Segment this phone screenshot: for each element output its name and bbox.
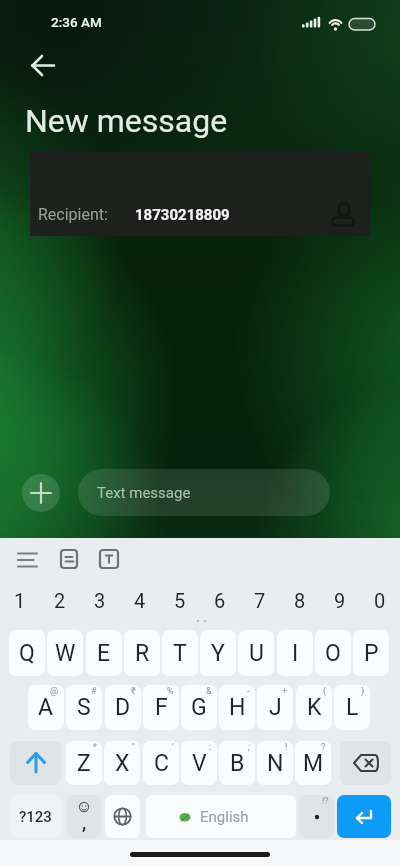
button[interactable]: O bbox=[315, 630, 351, 676]
button[interactable]: 9 bbox=[320, 585, 360, 615]
staticText: H bbox=[229, 694, 246, 721]
staticText: X bbox=[115, 750, 130, 777]
button[interactable]: T bbox=[162, 630, 198, 676]
staticText: : bbox=[209, 742, 212, 753]
staticText: A bbox=[38, 694, 54, 721]
button[interactable] bbox=[105, 795, 140, 838]
button[interactable]: N bbox=[257, 741, 293, 785]
staticText: English bbox=[200, 808, 249, 826]
button[interactable]: , bbox=[67, 795, 101, 838]
button[interactable]: G bbox=[181, 685, 217, 730]
button[interactable]: P bbox=[353, 630, 389, 676]
staticText: - bbox=[247, 686, 250, 697]
staticText: F bbox=[155, 694, 168, 721]
button[interactable] bbox=[58, 544, 82, 572]
staticText: 1 bbox=[14, 589, 26, 612]
button[interactable]: U bbox=[238, 630, 274, 676]
button[interactable]: K bbox=[296, 685, 332, 730]
button[interactable]: C bbox=[143, 741, 179, 785]
staticText: 6 bbox=[214, 589, 226, 612]
button[interactable]: 1 bbox=[0, 585, 40, 615]
staticText: C bbox=[154, 750, 169, 777]
staticText: + bbox=[282, 686, 288, 697]
staticText: L bbox=[346, 694, 359, 721]
button[interactable]: 2 bbox=[40, 585, 80, 615]
button[interactable]: Z bbox=[66, 741, 102, 785]
button[interactable]: S bbox=[66, 685, 102, 730]
staticText: Text message bbox=[97, 484, 191, 502]
staticText: J bbox=[269, 694, 282, 721]
staticText: W bbox=[55, 640, 76, 667]
staticText: E bbox=[97, 640, 111, 667]
button[interactable]: I bbox=[277, 630, 313, 676]
button[interactable]: L bbox=[334, 685, 370, 730]
staticText: P bbox=[364, 640, 379, 667]
staticText: 18730218809 bbox=[135, 206, 230, 224]
button[interactable]: D bbox=[105, 685, 141, 730]
button[interactable]: B bbox=[219, 741, 255, 785]
staticText: B bbox=[230, 750, 245, 777]
button[interactable] bbox=[22, 46, 66, 86]
staticText: O bbox=[325, 640, 341, 667]
button[interactable]: M bbox=[295, 741, 331, 785]
button[interactable] bbox=[10, 741, 61, 785]
button[interactable]: F bbox=[143, 685, 179, 730]
staticText: New message bbox=[25, 102, 228, 140]
staticText: Q bbox=[19, 640, 35, 667]
staticText: ? bbox=[321, 742, 326, 753]
staticText: S bbox=[77, 694, 91, 721]
button[interactable]: 0 bbox=[360, 585, 400, 615]
button[interactable]: H bbox=[219, 685, 255, 730]
button[interactable]: X bbox=[104, 741, 140, 785]
staticText: T bbox=[173, 640, 187, 667]
button[interactable] bbox=[22, 474, 60, 512]
staticText: 9 bbox=[334, 589, 346, 612]
staticText: I bbox=[292, 640, 299, 667]
button[interactable]: W bbox=[47, 630, 83, 676]
staticText: ₹ bbox=[131, 686, 136, 697]
button[interactable]: A bbox=[28, 685, 64, 730]
staticText: # bbox=[91, 686, 97, 697]
staticText: , bbox=[82, 811, 87, 833]
staticText: ; bbox=[248, 742, 250, 753]
button[interactable]: 7 bbox=[240, 585, 280, 615]
button[interactable]: R bbox=[124, 630, 160, 676]
button[interactable] bbox=[12, 544, 44, 576]
staticText: Recipient: bbox=[38, 205, 108, 224]
button[interactable]: 8 bbox=[280, 585, 320, 615]
button[interactable]: 5 bbox=[160, 585, 200, 615]
staticText: D bbox=[115, 694, 131, 721]
button[interactable]: Q bbox=[9, 630, 45, 676]
button[interactable]: !? bbox=[299, 795, 334, 838]
staticText: !? bbox=[322, 796, 329, 807]
button[interactable] bbox=[97, 544, 123, 572]
staticText: ' bbox=[172, 742, 174, 753]
staticText: & bbox=[206, 686, 212, 697]
staticText: 2:36 AM bbox=[51, 14, 102, 30]
staticText: 2 bbox=[54, 589, 66, 612]
staticText: Z bbox=[77, 750, 91, 777]
staticText: 7 bbox=[254, 589, 266, 612]
button[interactable]: 3 bbox=[80, 585, 120, 615]
button[interactable]: Recipient: bbox=[30, 152, 370, 236]
staticText: V bbox=[192, 750, 207, 777]
button[interactable] bbox=[337, 795, 391, 838]
button[interactable]: Text message bbox=[78, 469, 330, 516]
button[interactable]: E bbox=[86, 630, 122, 676]
staticText: 0 bbox=[374, 589, 386, 612]
button[interactable]: ?123 bbox=[10, 795, 61, 838]
button[interactable]: English bbox=[146, 795, 296, 838]
button[interactable]: J bbox=[257, 685, 293, 730]
staticText: ?123 bbox=[19, 808, 52, 826]
button[interactable]: 4 bbox=[120, 585, 160, 615]
staticText: ( bbox=[323, 686, 327, 697]
staticText: % bbox=[167, 686, 174, 697]
button[interactable]: V bbox=[181, 741, 217, 785]
staticText: ) bbox=[361, 686, 365, 697]
button[interactable]: 6 bbox=[200, 585, 240, 615]
staticText: * bbox=[93, 742, 97, 753]
button[interactable]: Y bbox=[200, 630, 236, 676]
staticText: G bbox=[191, 694, 207, 721]
staticText: ! bbox=[285, 742, 288, 753]
button[interactable] bbox=[340, 741, 391, 785]
